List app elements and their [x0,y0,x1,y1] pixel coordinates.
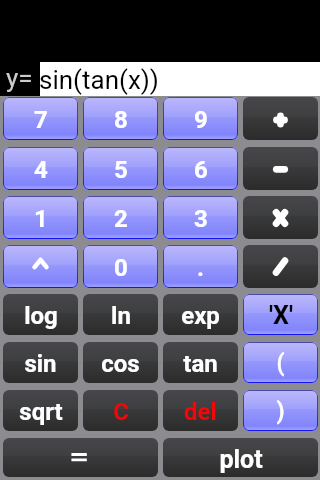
button[interactable]: sin(tan(x)) [40,62,320,96]
staticText: ) [276,398,285,425]
staticText: 'X' [269,301,293,330]
staticText: 8 [114,106,128,134]
staticText: ( [276,350,285,377]
staticText: 5 [114,156,128,184]
staticText: sin [24,350,57,378]
staticText: cos [101,350,140,378]
staticText: C [113,398,129,426]
button[interactable]: sqrt [3,390,78,431]
button[interactable]: sin [3,342,78,383]
button[interactable]: plot [163,438,318,477]
button[interactable]: 5 [83,147,158,190]
button[interactable]: Multiply [243,196,318,239]
button[interactable]: ( [243,342,318,383]
staticText: . [197,254,204,282]
button[interactable]: cos [83,342,158,383]
staticText: sqrt [19,398,63,426]
button[interactable]: tan [163,342,238,383]
staticText: 9 [194,106,208,134]
button[interactable]: 0 [83,245,158,288]
button[interactable]: del [163,390,238,431]
staticText: del [184,398,217,426]
button[interactable]: log [3,294,78,335]
button[interactable]: 4 [3,147,78,190]
button[interactable]: Minus [243,147,318,190]
staticText: sin(tan(x)) [39,65,159,95]
button[interactable]: 8 [83,97,158,140]
staticText: 6 [194,156,208,184]
button[interactable]: 'X' [243,294,318,335]
staticText: 0 [114,254,128,282]
staticText: 7 [34,106,48,134]
staticText: tan [183,350,218,378]
staticText: 3 [194,205,208,233]
button[interactable]: exp [163,294,238,335]
staticText: 4 [34,156,48,184]
button[interactable]: Divide [243,245,318,288]
button[interactable]: 3 [163,196,238,239]
button[interactable]: 2 [83,196,158,239]
button[interactable]: Power [3,245,78,288]
button[interactable]: 9 [163,97,238,140]
staticText: ln [111,302,131,330]
staticText: y= [6,63,33,93]
staticText: exp [181,302,220,330]
button[interactable]: Equals [3,438,158,477]
button[interactable]: 6 [163,147,238,190]
button[interactable]: ln [83,294,158,335]
staticText: log [24,302,58,330]
button[interactable]: Plus [243,97,318,140]
staticText: 2 [114,205,128,233]
button[interactable]: . [163,245,238,288]
button[interactable]: C [83,390,158,431]
button[interactable]: 1 [3,196,78,239]
button[interactable]: 7 [3,97,78,140]
staticText: plot [219,445,263,474]
button[interactable]: ) [243,390,318,431]
staticText: 1 [34,205,48,233]
